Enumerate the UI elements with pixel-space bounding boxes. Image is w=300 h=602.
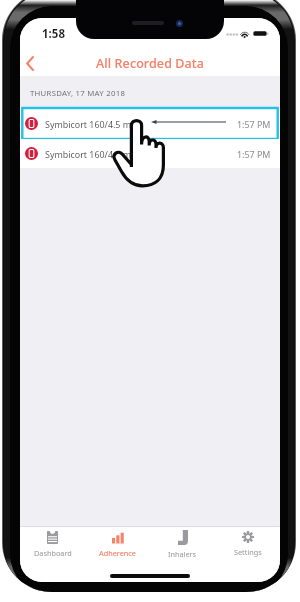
staticText: All Recorded Data xyxy=(96,55,204,72)
button[interactable]: Settings xyxy=(215,527,280,561)
button[interactable]: Inhalers xyxy=(150,527,215,561)
staticText: 1:57 PM xyxy=(237,118,271,130)
button[interactable]: Adherence xyxy=(85,527,150,561)
button[interactable]: Symbicort 160/4.5 mcg xyxy=(20,139,280,168)
button[interactable]: Dashboard xyxy=(20,527,85,561)
staticText: 1:58 xyxy=(42,26,65,42)
staticText: Settings xyxy=(234,547,262,557)
staticText: 1:57 PM xyxy=(237,148,271,160)
staticText: Adherence xyxy=(99,548,136,558)
staticText: Inhalers xyxy=(168,549,197,559)
staticText: THURSDAY, 17 MAY 2018 xyxy=(30,88,126,99)
staticText: Symbicort 160/4.5 mcg xyxy=(45,118,141,130)
staticText: Symbicort 160/4.5 mcg xyxy=(45,148,141,160)
button[interactable]: Symbicort 160/4.5 mcg xyxy=(20,108,280,139)
staticText: Dashboard xyxy=(34,548,72,558)
button[interactable]: Back xyxy=(20,51,42,76)
